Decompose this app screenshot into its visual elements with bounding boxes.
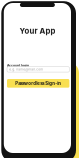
staticText: Your App: [19, 26, 55, 36]
staticText: e.g. name@mail.com: [9, 67, 43, 71]
staticText: Account login: [7, 63, 29, 68]
button[interactable]: Passwordless Sign-in: [7, 79, 69, 88]
staticText: Passwordless Sign-in: [15, 81, 61, 86]
